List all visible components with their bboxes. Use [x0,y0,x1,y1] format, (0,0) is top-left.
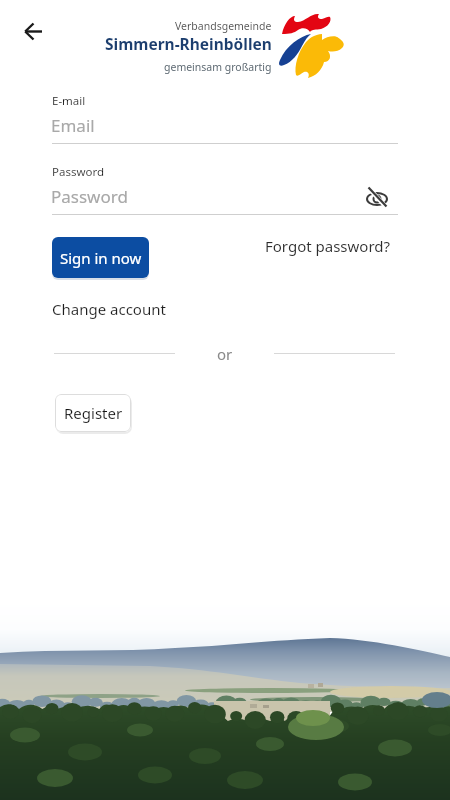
staticText: E-mail [52,93,86,109]
staticText: Simmern-Rheinböllen [105,33,272,54]
button[interactable]: Forgot password? [265,236,391,256]
staticText: Sign in now [60,248,142,268]
staticText: Password [52,164,105,180]
staticText: or [217,344,233,364]
staticText: Verbandsgemeinde [175,19,272,33]
staticText: Email [51,114,95,137]
button[interactable] [15,13,51,49]
button[interactable]: Sign in now [52,237,149,278]
button[interactable]: Email [52,110,398,144]
staticText: Register [64,403,123,423]
staticText: gemeinsam großartig [164,60,272,74]
button[interactable] [360,182,394,216]
button[interactable]: Register [55,394,131,432]
staticText: Password [51,185,128,208]
button[interactable]: Password [52,181,398,215]
button[interactable]: Change account [52,299,166,319]
